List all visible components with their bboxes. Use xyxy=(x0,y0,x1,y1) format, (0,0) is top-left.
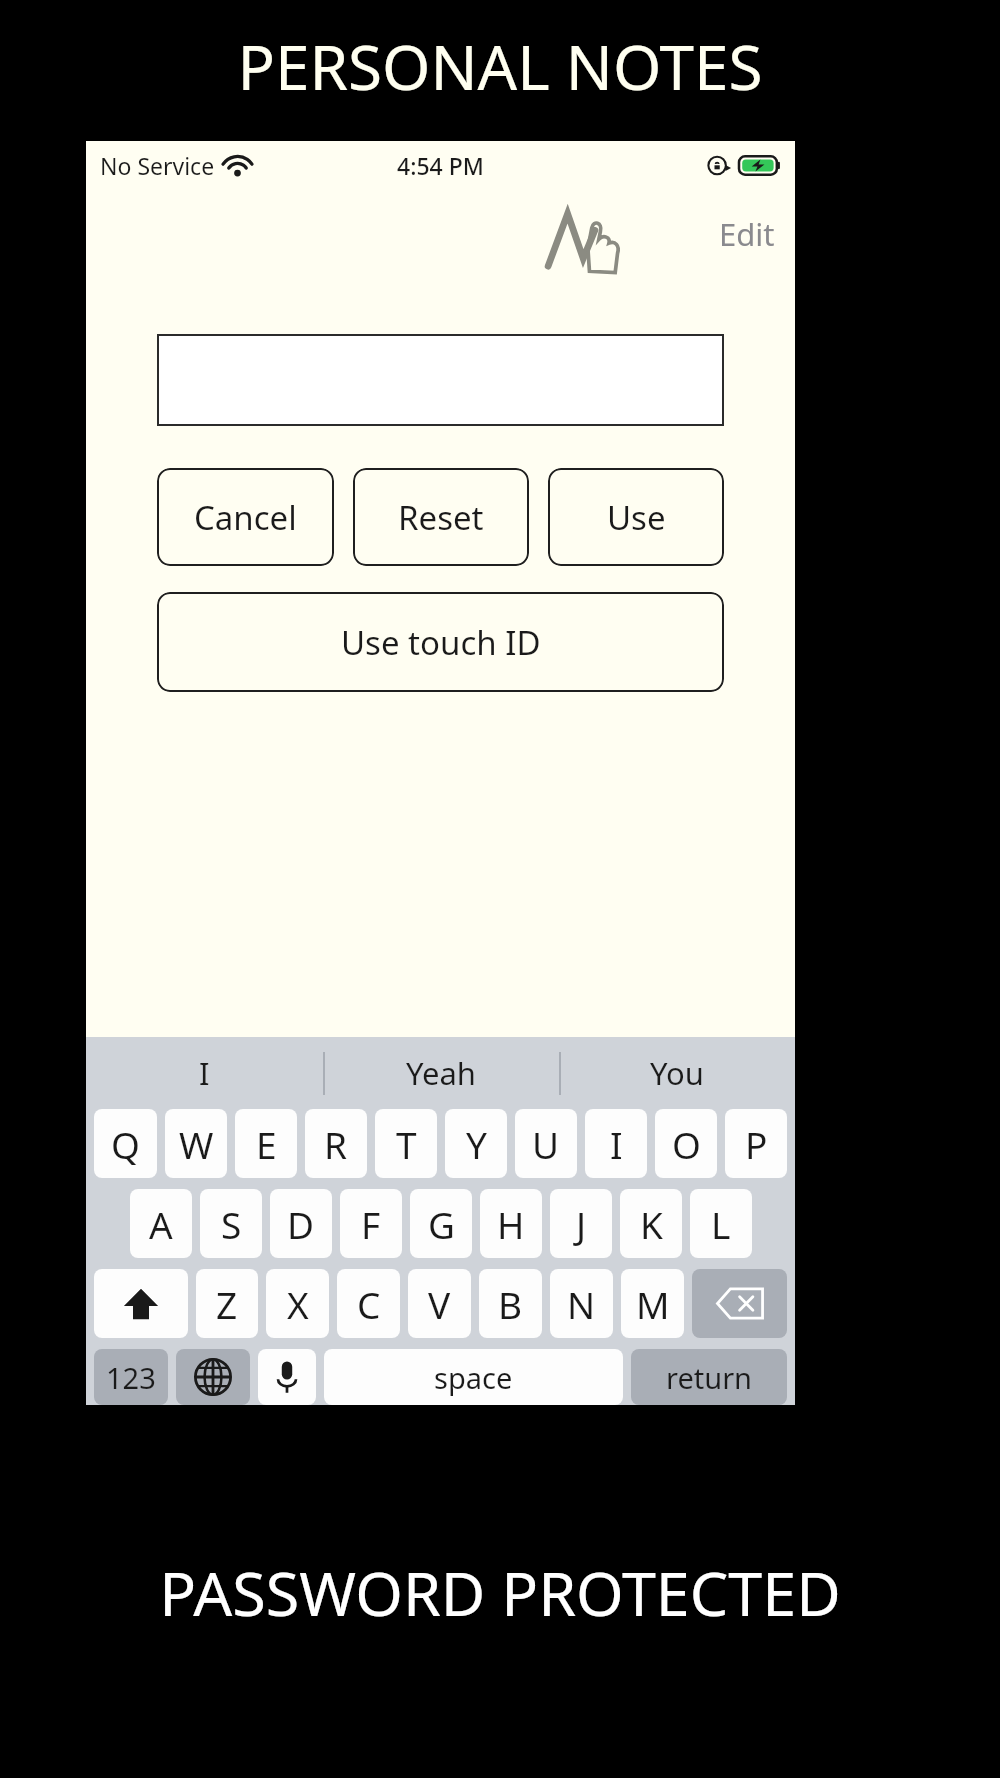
staticText: N xyxy=(567,1279,596,1329)
button[interactable]: J xyxy=(550,1189,612,1258)
button[interactable]: Backspace xyxy=(692,1269,787,1338)
staticText: V xyxy=(428,1279,451,1329)
other: Backspace xyxy=(716,1286,764,1321)
button[interactable]: L xyxy=(690,1189,752,1258)
button[interactable]: T xyxy=(375,1109,437,1178)
staticText: E xyxy=(256,1119,277,1169)
button[interactable]: Q xyxy=(94,1109,157,1178)
staticText: K xyxy=(640,1199,663,1249)
button[interactable]: O xyxy=(655,1109,717,1178)
button[interactable]: E xyxy=(235,1109,297,1178)
button[interactable]: N xyxy=(550,1269,613,1338)
staticText: H xyxy=(497,1199,525,1249)
button[interactable]: Use xyxy=(548,468,724,566)
staticText: G xyxy=(428,1199,455,1249)
button[interactable]: I xyxy=(585,1109,647,1178)
button[interactable]: return xyxy=(631,1349,787,1405)
staticText: O xyxy=(672,1119,701,1169)
staticText: 123 xyxy=(106,1358,156,1397)
button[interactable]: You xyxy=(559,1037,795,1109)
staticText: PERSONAL NOTES xyxy=(237,24,763,108)
staticText: R xyxy=(324,1119,348,1169)
staticText: return xyxy=(666,1358,753,1397)
button[interactable]: R xyxy=(305,1109,367,1178)
button[interactable]: S xyxy=(200,1189,262,1258)
staticText: space xyxy=(434,1358,513,1397)
button[interactable]: Z xyxy=(196,1269,258,1338)
button[interactable]: M xyxy=(621,1269,684,1338)
staticText: You xyxy=(650,1052,704,1094)
button[interactable]: I xyxy=(86,1037,323,1109)
staticText: U xyxy=(532,1119,560,1169)
button[interactable]: A xyxy=(130,1189,192,1258)
staticText: Edit xyxy=(719,213,775,255)
button[interactable]: B xyxy=(479,1269,542,1338)
button[interactable]: Switch keyboard xyxy=(176,1349,250,1405)
staticText: A xyxy=(149,1199,173,1249)
other: Dictate xyxy=(269,1359,305,1395)
staticText: No Service xyxy=(100,150,215,181)
button[interactable]: Scribble to edit xyxy=(545,206,623,270)
staticText: PASSWORD PROTECTED xyxy=(159,1551,841,1634)
button[interactable]: 123 xyxy=(94,1349,168,1405)
button[interactable]: V xyxy=(408,1269,471,1338)
staticText: 4:54 PM xyxy=(397,150,484,181)
button[interactable]: U xyxy=(515,1109,577,1178)
button[interactable] xyxy=(157,334,724,426)
button[interactable]: F xyxy=(340,1189,402,1258)
button[interactable]: C xyxy=(337,1269,400,1338)
staticText: J xyxy=(576,1199,587,1249)
button[interactable]: G xyxy=(410,1189,472,1258)
staticText: X xyxy=(287,1279,309,1329)
staticText: C xyxy=(357,1279,381,1329)
other: Shift xyxy=(122,1285,160,1323)
staticText: Yeah xyxy=(406,1052,477,1094)
button[interactable]: Y xyxy=(445,1109,507,1178)
staticText: W xyxy=(179,1119,214,1169)
button[interactable]: Use touch ID xyxy=(157,592,724,692)
button[interactable]: space xyxy=(324,1349,623,1405)
staticText: Z xyxy=(216,1279,238,1329)
button[interactable]: Reset xyxy=(353,468,529,566)
staticText: I xyxy=(199,1052,210,1094)
staticText: Y xyxy=(466,1119,487,1169)
staticText: P xyxy=(745,1119,768,1169)
staticText: F xyxy=(361,1199,381,1249)
staticText: Use xyxy=(607,495,666,540)
button[interactable]: W xyxy=(165,1109,227,1178)
button[interactable]: H xyxy=(480,1189,542,1258)
button[interactable]: P xyxy=(725,1109,787,1178)
button[interactable]: X xyxy=(266,1269,329,1338)
button[interactable]: K xyxy=(620,1189,682,1258)
staticText: Cancel xyxy=(194,495,297,540)
button[interactable]: D xyxy=(270,1189,332,1258)
staticText: D xyxy=(287,1199,315,1249)
staticText: I xyxy=(610,1119,623,1169)
staticText: Use touch ID xyxy=(341,620,541,665)
button[interactable]: Cancel xyxy=(157,468,334,566)
staticText: Q xyxy=(111,1119,140,1169)
button[interactable]: Yeah xyxy=(323,1037,559,1109)
staticText: T xyxy=(396,1119,417,1169)
staticText: S xyxy=(221,1199,242,1249)
staticText: M xyxy=(636,1279,670,1329)
button[interactable]: Shift xyxy=(94,1269,188,1338)
button[interactable]: Dictate xyxy=(258,1349,316,1405)
other: Switch keyboard xyxy=(193,1357,233,1397)
button[interactable]: Edit xyxy=(711,205,783,263)
staticText: Reset xyxy=(398,495,484,540)
staticText: B xyxy=(498,1279,523,1329)
staticText: L xyxy=(711,1199,731,1249)
